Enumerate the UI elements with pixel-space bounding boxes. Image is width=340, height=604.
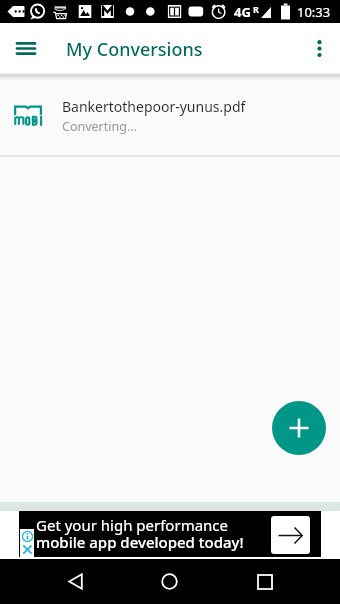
button[interactable]: Open navigation menu [8,30,44,66]
button[interactable]: Recent apps [242,559,287,604]
button[interactable]: Get your high performance [19,511,321,557]
staticText: Converting... [62,118,137,135]
staticText: 4G [234,3,251,21]
staticText: Bankertothepoor-yunus.pdf [62,97,246,116]
button[interactable]: Back [53,559,98,604]
button[interactable]: More options [301,30,337,66]
button[interactable]: Bankertothepoor-yunus.pdf [0,73,340,159]
button[interactable]: Home [147,559,192,604]
staticText: My Conversions [66,37,203,62]
staticText: mobile app developed today! [36,532,244,552]
button[interactable]: New conversion [272,401,326,455]
staticText: Get your high performance [36,515,229,535]
staticText: R [253,3,259,15]
staticText: 10:33 [297,3,331,21]
button[interactable]: Open advertisement [271,516,310,554]
